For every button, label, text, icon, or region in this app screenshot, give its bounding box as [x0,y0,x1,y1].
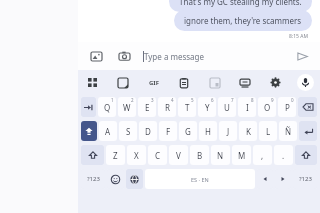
staticText: O [264,102,271,113]
button[interactable]: C [148,145,167,165]
staticText: ignore them, they're scammers [184,15,302,26]
button[interactable]: GIF [145,74,162,91]
staticText: ?123 [87,175,100,183]
button[interactable] [81,145,104,165]
staticText: T [185,102,190,113]
staticText: S [126,126,131,137]
staticText: 8 [251,97,254,103]
button[interactable]: 8 [238,97,256,117]
button[interactable] [299,121,317,141]
button[interactable] [107,169,124,189]
staticText: 5 [191,97,194,103]
staticText: F [166,126,171,137]
staticText: R [165,102,170,113]
button[interactable]: ?123 [81,169,105,189]
button[interactable]: Voice input [297,74,314,91]
staticText: A [105,126,111,137]
button[interactable]: 1 [98,97,116,117]
staticText: GIF [149,79,159,87]
button[interactable]: 4 [158,97,176,117]
staticText: X [134,150,139,161]
button[interactable]: G [179,121,197,141]
staticText: E [145,102,150,113]
button[interactable]: H [199,121,217,141]
button[interactable]: Settings [267,74,284,91]
button[interactable]: 0 [278,97,296,117]
staticText: 6 [211,97,214,103]
staticText: 3 [151,97,154,103]
staticText: 8:15 AM [289,33,308,40]
staticText: , [261,150,264,161]
button[interactable]: Translate [206,74,223,91]
staticText: G [185,126,191,137]
button[interactable]: 2 [118,97,136,117]
staticText: L [266,126,271,137]
button[interactable]: M [232,145,251,165]
staticText: Type a message [144,51,205,62]
button[interactable]: ES · EN [145,169,255,189]
button[interactable]: Send [293,47,311,65]
button[interactable] [275,169,291,189]
button[interactable]: D [139,121,157,141]
staticText: H [205,126,211,137]
button[interactable]: Apps [84,74,101,91]
staticText: 2 [131,97,134,103]
staticText: N [217,150,224,161]
staticText: 9 [271,97,274,103]
button[interactable]: Clipboard [175,74,192,91]
button[interactable]: S [119,121,137,141]
button[interactable]: . [274,145,293,165]
button[interactable] [298,97,317,117]
button[interactable]: ?123 [293,169,317,189]
button[interactable]: V [169,145,188,165]
button[interactable]: , [253,145,272,165]
staticText: ES · EN [191,176,209,183]
button[interactable] [81,121,97,141]
button[interactable]: J [219,121,237,141]
staticText: U [224,102,230,113]
staticText: Ñ [285,126,292,137]
staticText: V [176,150,181,161]
button[interactable]: A [99,121,117,141]
staticText: C [155,150,161,161]
button[interactable]: Z [106,145,125,165]
button[interactable]: L [259,121,277,141]
button[interactable]: Type a message [143,42,293,70]
staticText: Y [205,102,210,113]
staticText: 0 [291,97,294,103]
button[interactable]: X [127,145,146,165]
button[interactable] [81,97,96,117]
button[interactable]: Gallery [87,47,105,65]
button[interactable]: 3 [138,97,156,117]
button[interactable]: 7 [218,97,236,117]
button[interactable]: 6 [198,97,216,117]
button[interactable]: 9 [258,97,276,117]
button[interactable]: N [211,145,230,165]
staticText: That's my GC stealing my clients. [179,0,302,7]
staticText: 4 [171,97,174,103]
staticText: K [246,126,251,137]
staticText: I [246,102,249,113]
button[interactable]: F [159,121,177,141]
button[interactable]: K [239,121,257,141]
staticText: Z [113,150,118,161]
staticText: B [197,150,203,161]
button[interactable]: Ñ [279,121,297,141]
button[interactable]: 5 [178,97,196,117]
staticText: D [145,126,151,137]
button[interactable]: Camera [115,47,133,65]
staticText: W [123,102,131,113]
staticText: Q [104,102,111,113]
staticText: 7 [231,97,234,103]
button[interactable]: Stickers [114,74,131,91]
button[interactable]: B [190,145,209,165]
staticText: J [227,126,230,137]
button[interactable] [295,145,317,165]
staticText: ?123 [299,175,312,183]
staticText: M [238,150,246,161]
staticText: . [282,150,285,161]
button[interactable] [257,169,273,189]
staticText: P [285,102,290,113]
button[interactable] [126,169,143,189]
button[interactable]: Text editing [236,74,253,91]
